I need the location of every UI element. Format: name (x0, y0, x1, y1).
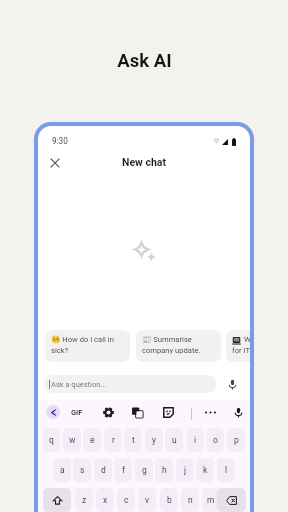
button[interactable]: e (83, 428, 101, 452)
button[interactable]: f (114, 458, 132, 482)
staticText: g (142, 465, 147, 475)
button[interactable]: v (138, 488, 156, 512)
staticText: z (82, 495, 87, 505)
button[interactable]: Clipboard (129, 404, 145, 420)
staticText: l (225, 465, 228, 475)
button[interactable]: Settings (100, 404, 116, 420)
button[interactable]: q (42, 428, 60, 452)
staticText: p (234, 435, 239, 445)
button[interactable]: r (104, 428, 122, 452)
button[interactable]: Backspace (217, 488, 246, 512)
staticText: u (172, 435, 177, 445)
button[interactable]: b (160, 488, 178, 512)
button[interactable]: 🤒 How do I call in sick? (45, 330, 130, 362)
button[interactable]: o (206, 428, 224, 452)
button[interactable]: i (186, 428, 204, 452)
button[interactable]: p (227, 428, 245, 452)
staticText: d (101, 465, 106, 475)
staticText: Ask a question... (51, 380, 107, 389)
staticText: for IT support (232, 346, 250, 355)
staticText: a (60, 465, 65, 475)
button[interactable]: m (202, 488, 220, 512)
button[interactable]: s (73, 458, 91, 482)
button[interactable]: Stickers (160, 404, 176, 420)
staticText: s (80, 465, 85, 475)
staticText: r (112, 435, 115, 445)
button[interactable]: GIF (67, 405, 87, 419)
button[interactable]: l (217, 458, 235, 482)
staticText: 📰 Summarise company update. (142, 335, 217, 355)
staticText: q (49, 435, 54, 445)
staticText: j (184, 465, 187, 475)
staticText: h (162, 465, 167, 475)
button[interactable]: y (145, 428, 163, 452)
button[interactable]: w (63, 428, 81, 452)
staticText: o (213, 435, 218, 445)
staticText: 9:30 (52, 136, 68, 146)
button[interactable]: Shift (43, 488, 71, 512)
button[interactable]: Voice typing (230, 404, 246, 420)
button[interactable]: u (165, 428, 183, 452)
staticText: i (194, 435, 197, 445)
staticText: m (207, 495, 215, 505)
staticText: New chat (122, 156, 166, 168)
button[interactable]: x (96, 488, 114, 512)
staticText: t (132, 435, 135, 445)
staticText: k (203, 465, 208, 475)
button[interactable]: Write a note (226, 330, 250, 362)
staticText: GIF (71, 408, 83, 417)
button[interactable]: More options (202, 404, 218, 420)
button[interactable]: j (176, 458, 194, 482)
button[interactable]: 📰 Summarise company update. (136, 330, 221, 362)
staticText: f (122, 465, 125, 475)
staticText: n (188, 495, 193, 505)
button[interactable]: Previous (46, 405, 60, 419)
button[interactable]: z (75, 488, 93, 512)
staticText: w (69, 435, 76, 445)
button[interactable]: Close (45, 153, 65, 173)
staticText: b (167, 495, 172, 505)
button[interactable]: k (196, 458, 214, 482)
staticText: v (145, 495, 150, 505)
staticText: x (103, 495, 108, 505)
staticText: 🤒 How do I call in sick? (51, 335, 126, 355)
button[interactable]: a (53, 458, 71, 482)
button[interactable]: Voice input (224, 376, 240, 392)
staticText: Write a note (244, 335, 250, 344)
button[interactable]: c (117, 488, 135, 512)
button[interactable]: t (124, 428, 142, 452)
button[interactable]: g (135, 458, 153, 482)
button[interactable]: n (181, 488, 199, 512)
button[interactable]: Ask a question... (44, 375, 217, 393)
staticText: y (152, 435, 157, 445)
button[interactable]: d (94, 458, 112, 482)
staticText: Ask AI (117, 50, 172, 72)
button[interactable]: h (155, 458, 173, 482)
staticText: e (90, 435, 95, 445)
staticText: c (124, 495, 129, 505)
